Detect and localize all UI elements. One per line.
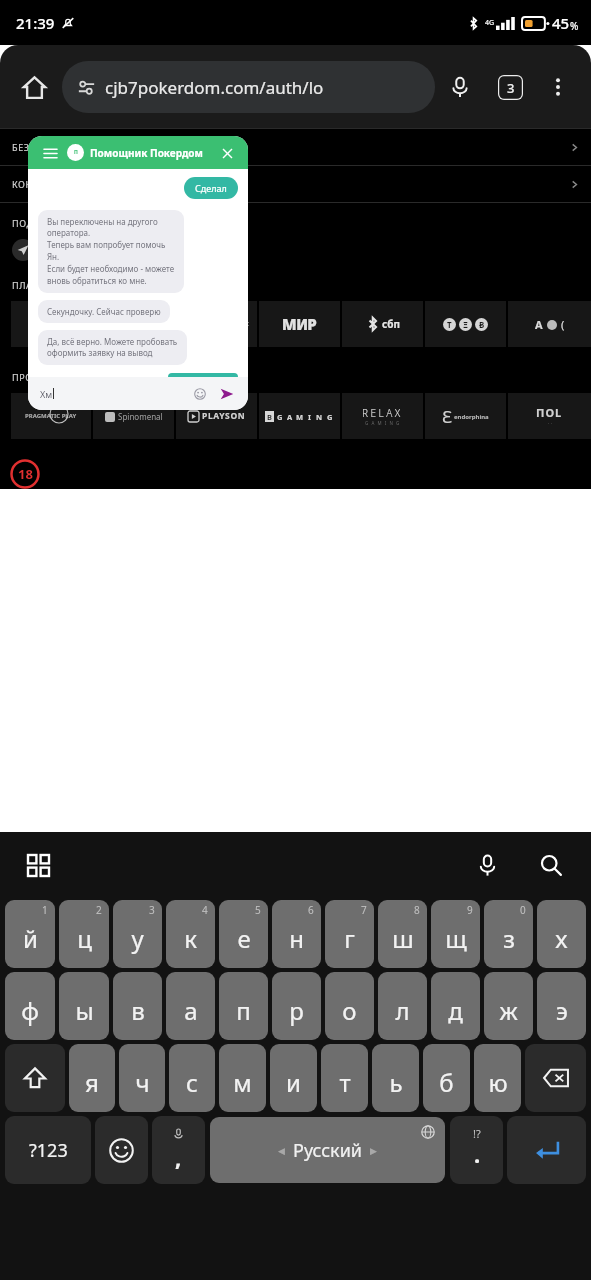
button[interactable]: Shift <box>5 1044 65 1112</box>
button[interactable]: Close chat <box>218 144 236 162</box>
button[interactable]: Comma <box>152 1116 205 1184</box>
button[interactable]: х <box>537 900 586 968</box>
button[interactable]: КОНТАКТЫ <box>0 166 591 202</box>
staticText: г <box>344 922 355 955</box>
staticText: у <box>131 922 144 955</box>
button[interactable]: Search <box>529 843 573 887</box>
button[interactable]: б <box>423 1044 470 1112</box>
button[interactable]: МИР <box>259 301 340 347</box>
staticText: Spinomenal <box>118 411 163 422</box>
button[interactable]: ю <box>474 1044 521 1112</box>
button[interactable]: More options <box>535 64 581 110</box>
staticText: · · <box>548 420 552 427</box>
button[interactable]: A <box>508 301 591 347</box>
button[interactable]: Emoji <box>95 1116 148 1184</box>
staticText: !? <box>473 1126 481 1141</box>
button[interactable]: B <box>259 393 340 439</box>
staticText: 18 <box>18 465 33 483</box>
button[interactable]: р <box>272 972 321 1040</box>
button[interactable]: PLAYSON <box>176 393 257 439</box>
button[interactable]: л <box>378 972 427 1040</box>
button[interactable]: ч <box>119 1044 165 1112</box>
staticText: сбп <box>382 317 400 331</box>
staticText: 0 <box>520 903 526 917</box>
button[interactable]: т <box>321 1044 368 1112</box>
button[interactable] <box>11 301 91 347</box>
button[interactable]: VISA <box>93 301 174 347</box>
staticText: PLAYSON <box>202 410 246 422</box>
button[interactable]: э <box>537 972 586 1040</box>
button[interactable]: 6 <box>272 900 321 968</box>
button[interactable]: cjb7pokerdom.com/auth/lo <box>62 61 435 113</box>
button[interactable]: Tabs: 3 <box>485 62 535 112</box>
button[interactable]: Monetix Wallet <box>176 301 257 347</box>
button[interactable]: Telegram <box>12 239 34 261</box>
staticText: G <box>277 412 283 422</box>
staticText: VISA <box>118 315 150 333</box>
button[interactable]: 7 <box>325 900 374 968</box>
button[interactable]: 9 <box>431 900 480 968</box>
button[interactable]: ж <box>484 972 533 1040</box>
button[interactable]: 2 <box>59 900 109 968</box>
button[interactable]: ь <box>372 1044 419 1112</box>
button[interactable]: 1 <box>5 900 55 968</box>
staticText: ПOL <box>536 405 563 420</box>
button[interactable]: 3 <box>113 900 162 968</box>
staticText: БЕЗОПАСНОСТЬ <box>12 141 90 153</box>
staticText: в <box>131 994 145 1027</box>
staticText: 1 <box>42 903 48 917</box>
staticText: ?123 <box>29 1138 68 1163</box>
button[interactable]: сбп <box>342 301 423 347</box>
button[interactable]: Keyboard options <box>18 845 58 885</box>
button[interactable]: PRAGMATIC PLAY <box>11 393 91 439</box>
button[interactable]: д <box>431 972 480 1040</box>
staticText: Ξ <box>463 319 469 330</box>
staticText: 8 <box>414 903 420 917</box>
button[interactable]: Backspace <box>525 1044 586 1112</box>
button[interactable]: Emoji <box>191 385 208 402</box>
staticText: э <box>556 994 568 1027</box>
staticText: е <box>237 922 251 955</box>
button[interactable]: 5 <box>219 900 268 968</box>
staticText: A <box>287 412 293 422</box>
button[interactable]: ы <box>59 972 109 1040</box>
button[interactable]: Enter <box>507 1116 586 1184</box>
button[interactable]: Spinomenal <box>93 393 174 439</box>
staticText: к <box>184 922 197 955</box>
button[interactable]: 4 <box>166 900 215 968</box>
staticText: % <box>570 19 579 33</box>
staticText: ж <box>499 994 518 1027</box>
button[interactable]: 0 <box>484 900 533 968</box>
button[interactable]: Send <box>217 384 236 403</box>
button[interactable]: Space <box>210 1117 445 1183</box>
button[interactable]: ПOL <box>508 393 591 439</box>
button[interactable]: Voice search <box>435 62 485 112</box>
button[interactable]: Symbols <box>5 1116 91 1184</box>
button[interactable]: RELAX <box>342 393 423 439</box>
staticText: х <box>555 922 568 955</box>
staticText: G <box>327 412 333 422</box>
button[interactable]: п <box>219 972 268 1040</box>
staticText: Monetix Wallet <box>197 319 249 329</box>
staticText: 21:39 <box>16 13 55 33</box>
button[interactable]: м <box>219 1044 266 1112</box>
button[interactable]: и <box>270 1044 317 1112</box>
button[interactable]: а <box>166 972 215 1040</box>
button[interactable]: Ɛ <box>425 393 506 439</box>
button[interactable]: я <box>69 1044 115 1112</box>
staticText: ПЛАТЕЖНЫЕ МЕТОДЫ <box>12 279 119 291</box>
button[interactable]: Home <box>10 63 58 111</box>
button[interactable]: БЕЗОПАСНОСТЬ <box>0 129 591 165</box>
staticText: и <box>286 1066 301 1099</box>
button[interactable]: в <box>113 972 162 1040</box>
button[interactable]: Period <box>450 1116 503 1184</box>
staticText: р <box>289 994 304 1027</box>
button[interactable]: ф <box>5 972 55 1040</box>
button[interactable]: T <box>425 301 506 347</box>
button[interactable]: 8 <box>378 900 427 968</box>
button[interactable]: о <box>325 972 374 1040</box>
button[interactable]: Menu <box>40 143 60 163</box>
button[interactable]: Voice input <box>465 843 509 887</box>
staticText: т <box>339 1066 351 1099</box>
button[interactable]: с <box>169 1044 215 1112</box>
